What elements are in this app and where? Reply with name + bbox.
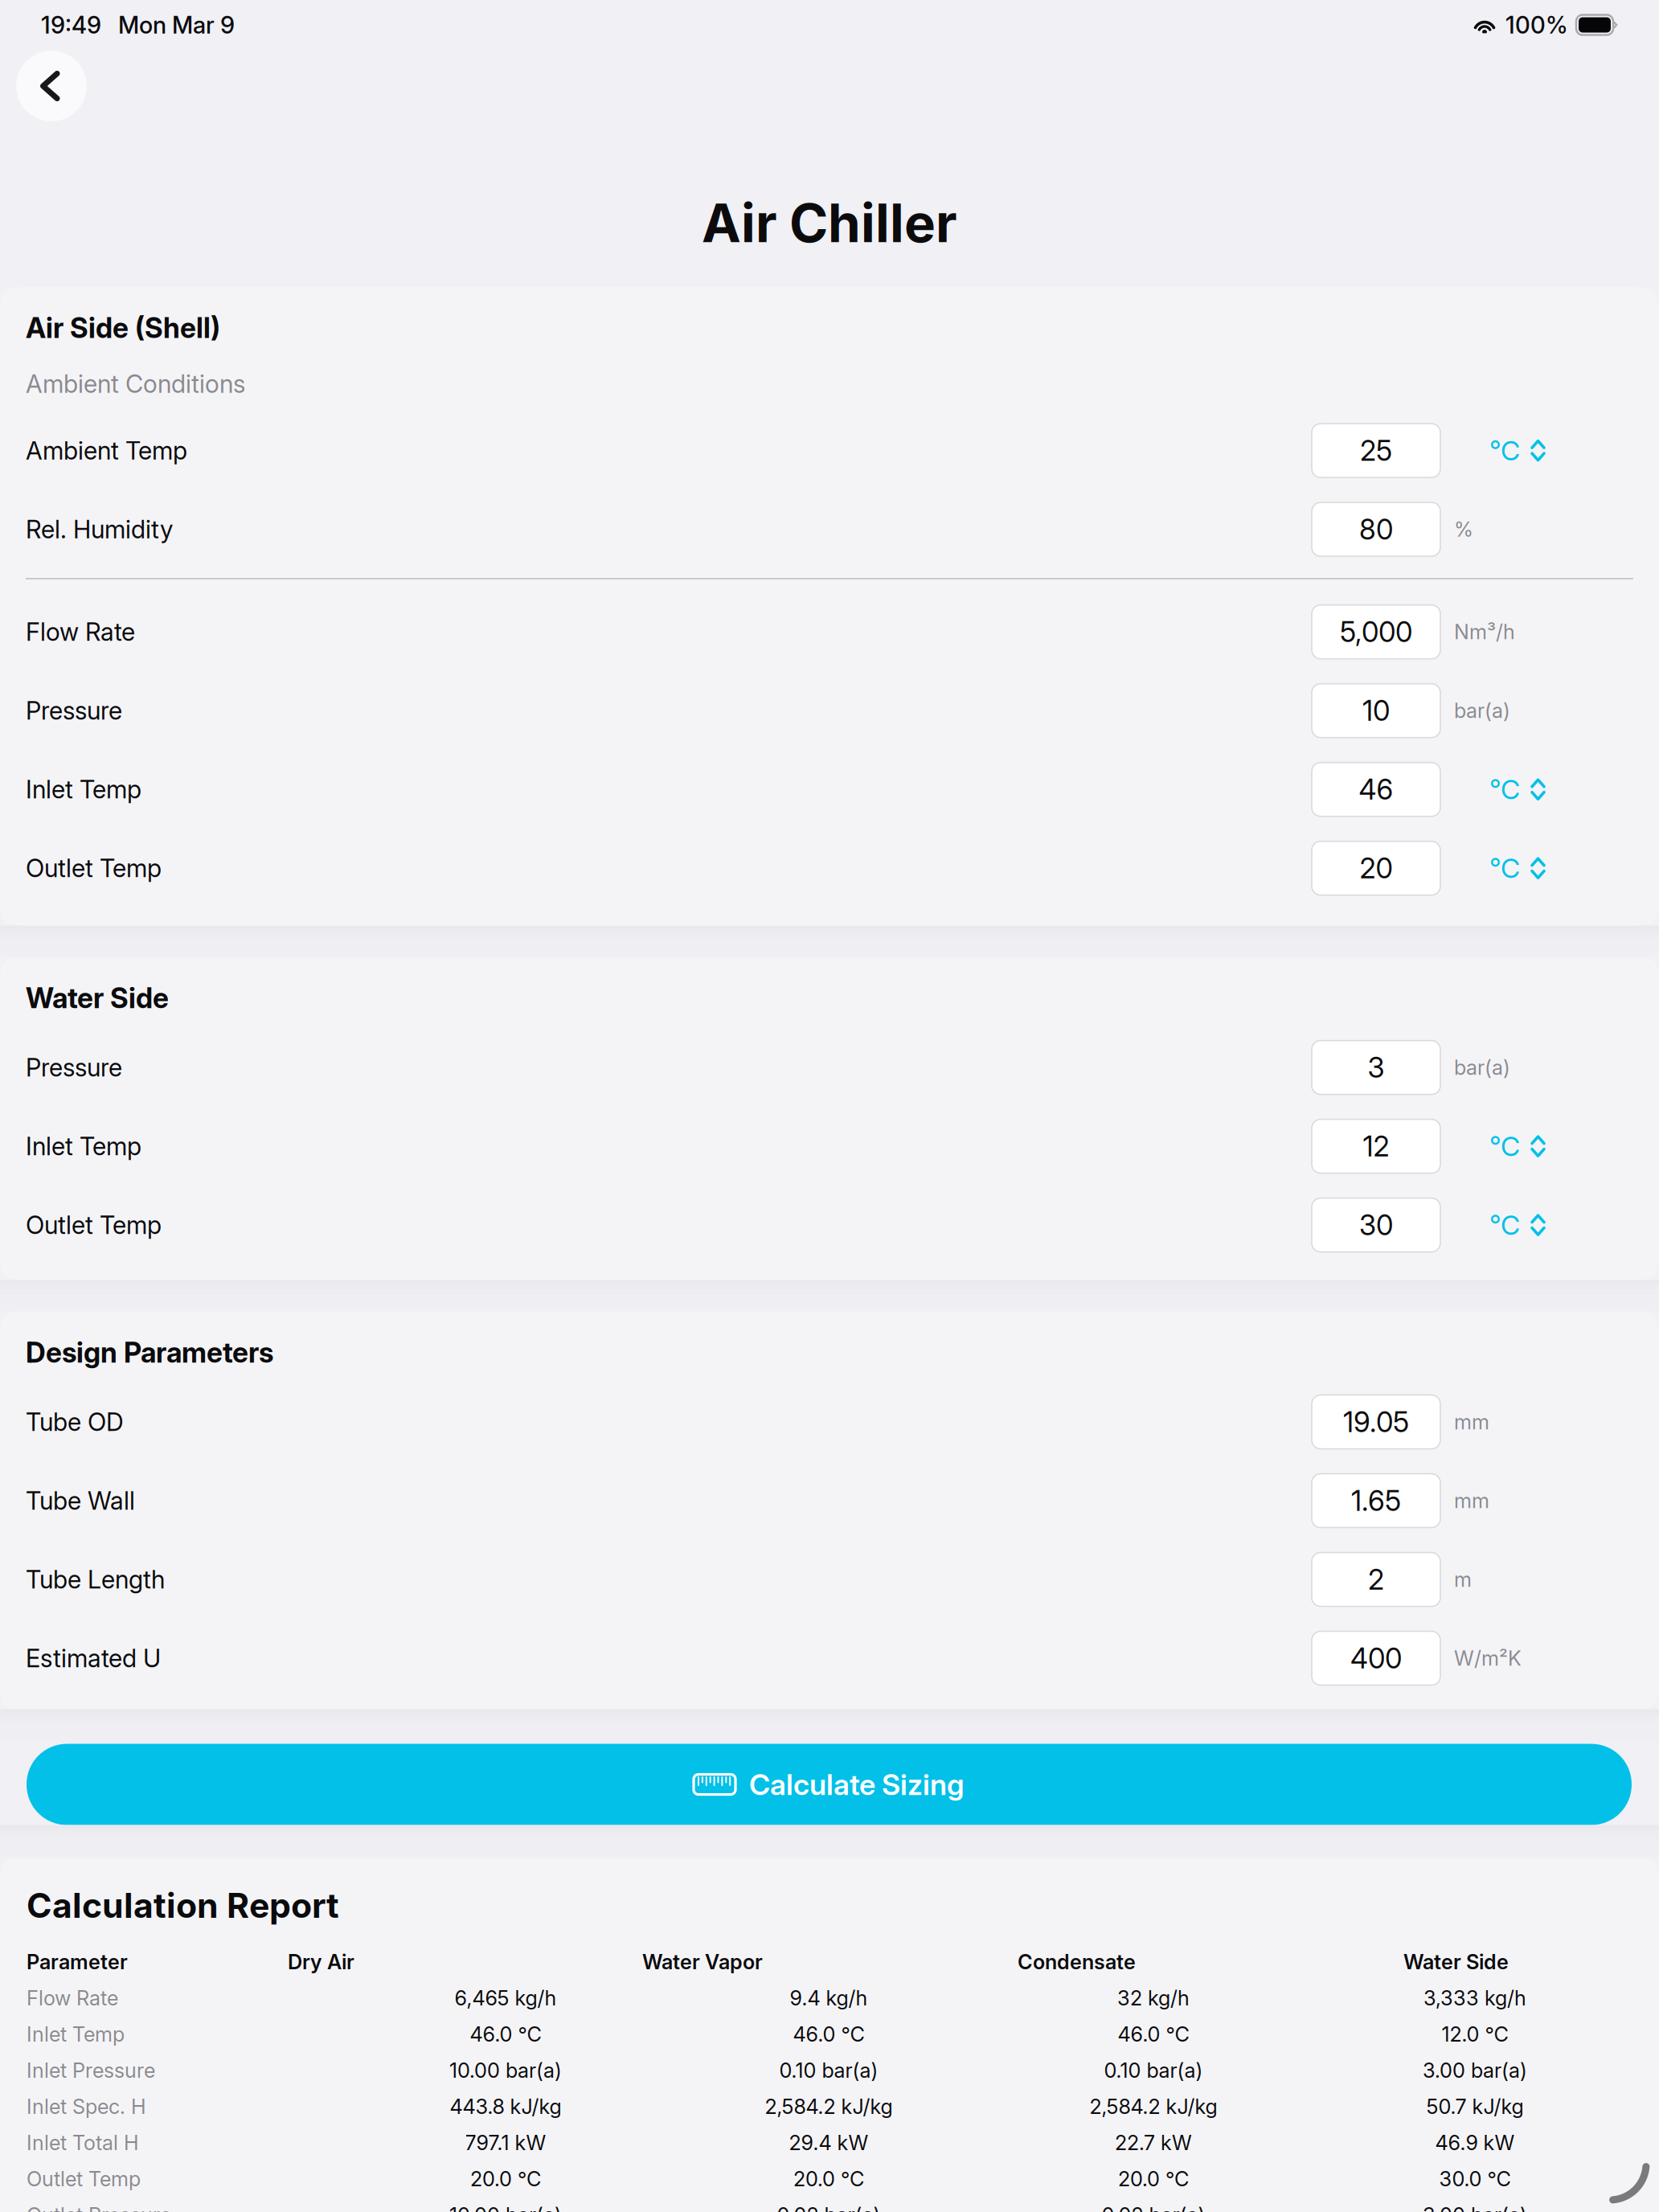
staticText: m xyxy=(1454,1567,1472,1592)
staticText: Flow Rate xyxy=(27,1986,118,2010)
staticText: Tube Length xyxy=(26,1565,165,1594)
staticText: Inlet Total H xyxy=(27,2130,139,2155)
staticText: Outlet Temp xyxy=(26,853,162,883)
staticText: 10 xyxy=(1362,694,1390,728)
staticText: °C xyxy=(1489,1130,1520,1162)
staticText: Outlet Temp xyxy=(26,1210,162,1240)
staticText: W/m²K xyxy=(1454,1646,1522,1671)
staticText: 9.4 kg/h xyxy=(790,1986,868,2010)
staticText: Nm³/h xyxy=(1454,620,1515,644)
staticText: 443.8 kJ/kg xyxy=(450,2094,561,2119)
staticText: 19:49 xyxy=(41,11,101,39)
staticText: 46.9 kW xyxy=(1435,2130,1515,2155)
staticText: 25 xyxy=(1360,434,1392,467)
staticText: 2,584.2 kJ/kg xyxy=(765,2094,893,2119)
staticText: Pressure xyxy=(26,1053,122,1082)
staticText: Water Side xyxy=(26,981,169,1015)
staticText: Ambient Temp xyxy=(26,436,187,465)
staticText: Inlet Temp xyxy=(26,1131,141,1161)
staticText: Rel. Humidity xyxy=(26,514,173,544)
staticText: 46.0 °C xyxy=(470,2022,541,2046)
staticText: mm xyxy=(1454,1488,1489,1513)
staticText: 20 xyxy=(1360,851,1393,885)
staticText: 32 kg/h xyxy=(1117,1986,1190,2010)
staticText: 46 xyxy=(1359,773,1393,806)
button[interactable]: Back xyxy=(16,51,87,121)
staticText: Water Vapor xyxy=(642,1949,763,1974)
staticText: 12 xyxy=(1363,1129,1389,1163)
staticText: Ambient Conditions xyxy=(26,369,245,399)
button[interactable]: °C xyxy=(1440,841,1633,895)
staticText: 22.7 kW xyxy=(1115,2130,1192,2155)
button[interactable]: °C xyxy=(1440,763,1633,816)
staticText: 0.02 bar(a) xyxy=(1102,2203,1205,2212)
staticText: °C xyxy=(1489,434,1520,467)
staticText: Air Side (Shell) xyxy=(26,311,220,345)
staticText: Parameter xyxy=(27,1949,128,1974)
staticText: °C xyxy=(1489,773,1520,806)
staticText: 6,465 kg/h xyxy=(455,1986,557,2010)
staticText: 100% xyxy=(1505,11,1568,39)
staticText: 12.0 °C xyxy=(1442,2022,1508,2046)
staticText: Inlet Temp xyxy=(27,2022,125,2046)
staticText: 0.10 bar(a) xyxy=(779,2058,878,2083)
staticText: °C xyxy=(1489,1209,1520,1241)
staticText: Tube Wall xyxy=(26,1486,135,1516)
staticText: 20.0 °C xyxy=(470,2166,541,2191)
staticText: 29.4 kW xyxy=(789,2130,868,2155)
staticText: 1.65 xyxy=(1351,1484,1401,1518)
staticText: 2,584.2 kJ/kg xyxy=(1090,2094,1217,2119)
button[interactable]: °C xyxy=(1440,1198,1633,1252)
staticText: Dry Air xyxy=(288,1949,354,1974)
staticText: Outlet Temp xyxy=(27,2166,141,2191)
staticText: 3.00 bar(a) xyxy=(1423,2203,1527,2212)
staticText: 5,000 xyxy=(1340,615,1412,649)
staticText: 20.0 °C xyxy=(793,2166,864,2191)
staticText: % xyxy=(1454,517,1473,542)
staticText: mm xyxy=(1454,1410,1489,1434)
staticText: Air Chiller xyxy=(702,191,957,255)
staticText: Water Side xyxy=(1403,1949,1509,1974)
staticText: 46.0 °C xyxy=(793,2022,864,2046)
staticText: 50.7 kJ/kg xyxy=(1426,2094,1524,2119)
staticText: 400 xyxy=(1350,1641,1402,1675)
staticText: Pressure xyxy=(26,696,122,726)
staticText: Inlet Spec. H xyxy=(27,2094,146,2119)
button[interactable]: °C xyxy=(1440,424,1633,478)
staticText: Mon Mar 9 xyxy=(118,11,235,39)
staticText: bar(a) xyxy=(1454,1055,1510,1080)
staticText: Estimated U xyxy=(26,1643,161,1673)
staticText: Calculation Report xyxy=(27,1884,339,1926)
staticText: 80 xyxy=(1359,512,1393,546)
staticText: Tube OD xyxy=(26,1407,124,1437)
staticText: 797.1 kW xyxy=(465,2130,546,2155)
button[interactable]: °C xyxy=(1440,1119,1633,1173)
staticText: 19.05 xyxy=(1343,1405,1409,1439)
staticText: 30 xyxy=(1359,1208,1393,1242)
staticText: 10.00 bar(a) xyxy=(449,2203,562,2212)
staticText: 10.00 bar(a) xyxy=(449,2058,562,2083)
staticText: Condensate xyxy=(1018,1949,1136,1974)
staticText: 30.0 °C xyxy=(1439,2166,1511,2191)
staticText: 3.00 bar(a) xyxy=(1423,2058,1527,2083)
staticText: 3,333 kg/h xyxy=(1423,1986,1526,2010)
staticText: 2 xyxy=(1368,1563,1384,1596)
staticText: °C xyxy=(1489,852,1520,884)
staticText: Calculate Sizing xyxy=(749,1767,965,1802)
staticText: Design Parameters xyxy=(26,1336,273,1369)
staticText: 3 xyxy=(1368,1051,1385,1084)
button[interactable]: Calculate Sizing xyxy=(27,1744,1632,1825)
staticText: 46.0 °C xyxy=(1118,2022,1189,2046)
staticText: Flow Rate xyxy=(26,617,135,647)
staticText: 0.02 bar(a) xyxy=(777,2203,881,2212)
staticText: Inlet Pressure xyxy=(27,2058,155,2083)
staticText: 0.10 bar(a) xyxy=(1104,2058,1203,2083)
staticText: Inlet Temp xyxy=(26,775,141,804)
staticText: Outlet Pressure xyxy=(27,2203,171,2212)
staticText: bar(a) xyxy=(1454,698,1510,723)
staticText: 20.0 °C xyxy=(1118,2166,1189,2191)
